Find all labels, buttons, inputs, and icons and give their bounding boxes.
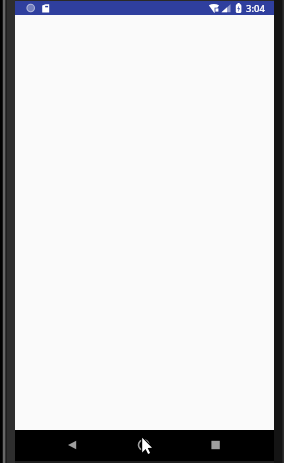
staticText: 3:04 [246, 2, 265, 15]
button[interactable]: Home [130, 431, 158, 459]
button[interactable]: Recent apps [202, 431, 230, 459]
button[interactable]: Back [58, 431, 86, 459]
